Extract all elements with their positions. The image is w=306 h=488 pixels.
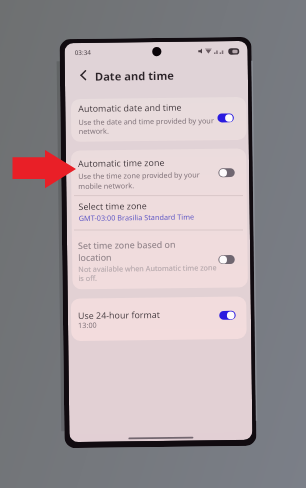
staticText: 03:34 — [75, 48, 92, 57]
button[interactable]: Back — [74, 65, 94, 85]
staticText: Use the date and time provided by your — [78, 115, 214, 127]
staticText: Automatic date and time — [78, 101, 182, 114]
staticText: Use 24-hour format — [78, 308, 161, 321]
staticText: GMT-03:00 Brasilia Standard Time — [79, 211, 195, 223]
staticText: network. — [78, 126, 110, 136]
staticText: Not available when Automatic time zone — [78, 262, 217, 274]
staticText: Select time zone — [78, 199, 148, 212]
button[interactable] — [71, 296, 246, 341]
button[interactable] — [70, 193, 246, 230]
staticText: is off. — [78, 273, 97, 283]
staticText: Set time zone based on — [78, 238, 176, 251]
staticText: location — [78, 251, 112, 263]
staticText: mobile network. — [78, 180, 134, 191]
staticText: Use the time zone provided by your — [78, 169, 200, 181]
button[interactable] — [71, 228, 246, 290]
button[interactable] — [71, 97, 247, 142]
staticText: Automatic time zone — [78, 156, 165, 169]
button[interactable] — [71, 148, 246, 195]
staticText: Date and time — [95, 68, 175, 84]
staticText: 13:00 — [78, 320, 97, 330]
